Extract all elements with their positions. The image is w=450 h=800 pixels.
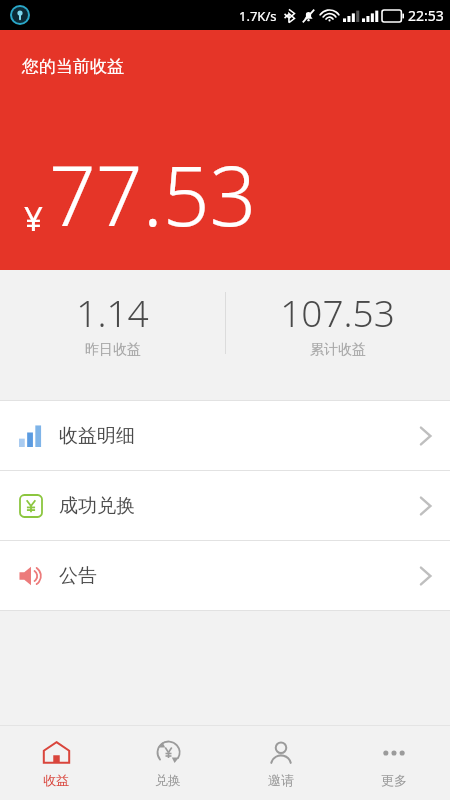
other: 兑换 (156, 740, 181, 765)
staticText: 您的当前收益 (22, 56, 124, 77)
staticText: 107.53 (280, 287, 395, 337)
other: 更多 (382, 749, 406, 757)
other: 收益 (43, 741, 70, 764)
staticText: 1.7K/s (239, 7, 277, 25)
button[interactable]: 兑换 (112, 726, 224, 800)
staticText: 累计收益 (310, 341, 366, 359)
staticText: 1.14 (76, 287, 149, 337)
staticText: 22:53 (408, 6, 444, 25)
staticText: 成功兑换 (59, 494, 135, 518)
staticText: 收益明细 (59, 424, 135, 448)
other: 邀请 (269, 741, 293, 765)
staticText: 兑换 (155, 772, 181, 788)
staticText: 昨日收益 (85, 341, 141, 359)
staticText: 公告 (59, 564, 97, 588)
button[interactable]: 成功兑换 (0, 471, 450, 540)
button[interactable]: 邀请 (224, 726, 337, 800)
button[interactable]: 收益明细 (0, 401, 450, 470)
button[interactable]: 公告 (0, 541, 450, 610)
staticText: 收益 (43, 772, 69, 788)
staticText: 邀请 (268, 772, 294, 788)
staticText: 更多 (381, 772, 407, 788)
button[interactable]: 收益 (0, 726, 112, 800)
staticText: 77.53 (49, 138, 257, 250)
button[interactable]: 更多 (337, 726, 450, 800)
staticText: ¥ (24, 196, 43, 241)
